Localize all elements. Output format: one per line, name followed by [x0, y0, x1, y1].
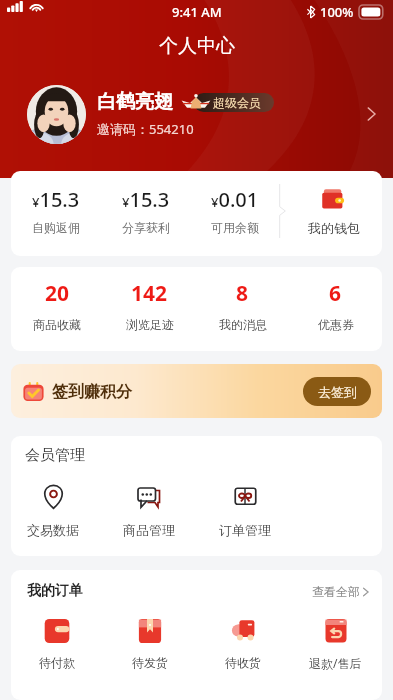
staticText: 去签到: [318, 384, 357, 400]
staticText: 142: [131, 279, 168, 308]
other: More: [366, 105, 377, 123]
staticText: 优惠券: [318, 317, 354, 332]
staticText: ¥15.3: [122, 186, 170, 213]
staticText: 会员管理: [25, 446, 85, 465]
staticText: 我的钱包: [308, 220, 360, 236]
staticText: 我的消息: [219, 317, 267, 332]
staticText: 待收货: [225, 655, 261, 670]
button[interactable]: 8: [196, 267, 289, 347]
button[interactable]: 待收货: [196, 616, 289, 670]
button[interactable]: 订单管理: [197, 484, 293, 538]
button[interactable]: 签到赚积分: [11, 364, 382, 418]
staticText: 我的订单: [27, 582, 83, 600]
staticText: 邀请码：554210: [97, 120, 194, 138]
staticText: 6: [329, 279, 342, 308]
staticText: 超级会员: [213, 95, 261, 110]
staticText: 9:41 AM: [172, 3, 222, 21]
button[interactable]: 商品管理: [101, 484, 197, 538]
staticText: 20: [45, 279, 70, 308]
staticText: ¥15.3: [32, 186, 80, 213]
button[interactable]: ¥0.01: [190, 171, 279, 253]
button[interactable]: 退款/售后: [289, 616, 382, 671]
staticText: 可用余额: [211, 220, 259, 235]
staticText: 订单管理: [219, 522, 271, 538]
staticText: 退款/售后: [309, 655, 362, 671]
staticText: 个人中心: [159, 34, 235, 58]
staticText: 100%: [320, 3, 354, 21]
staticText: 待发货: [132, 655, 168, 670]
button[interactable]: ¥15.3: [11, 171, 101, 253]
button[interactable]: 6: [289, 267, 382, 347]
button[interactable]: 20: [11, 267, 103, 347]
staticText: 待付款: [39, 655, 75, 670]
staticText: 商品收藏: [33, 317, 81, 332]
staticText: ¥0.01: [211, 186, 259, 213]
button[interactable]: 查看全部: [312, 584, 369, 599]
staticText: 浏览足迹: [126, 317, 174, 332]
staticText: 查看全部: [312, 584, 360, 599]
button[interactable]: ¥15.3: [101, 171, 190, 253]
staticText: 签到赚积分: [52, 382, 132, 402]
staticText: 白鹤亮翅: [97, 90, 173, 114]
button[interactable]: 142: [103, 267, 196, 347]
staticText: 商品管理: [123, 522, 175, 538]
staticText: 交易数据: [27, 522, 79, 538]
staticText: 8: [236, 279, 249, 308]
staticText: 自购返佣: [32, 220, 80, 235]
button[interactable]: 白鹤亮翅: [0, 64, 393, 164]
staticText: 分享获利: [122, 220, 170, 235]
button[interactable]: 待付款: [11, 616, 103, 670]
button[interactable]: 我的钱包: [286, 171, 382, 253]
button[interactable]: 交易数据: [11, 484, 101, 538]
button[interactable]: 去签到: [303, 377, 371, 406]
button[interactable]: 待发货: [103, 616, 196, 670]
